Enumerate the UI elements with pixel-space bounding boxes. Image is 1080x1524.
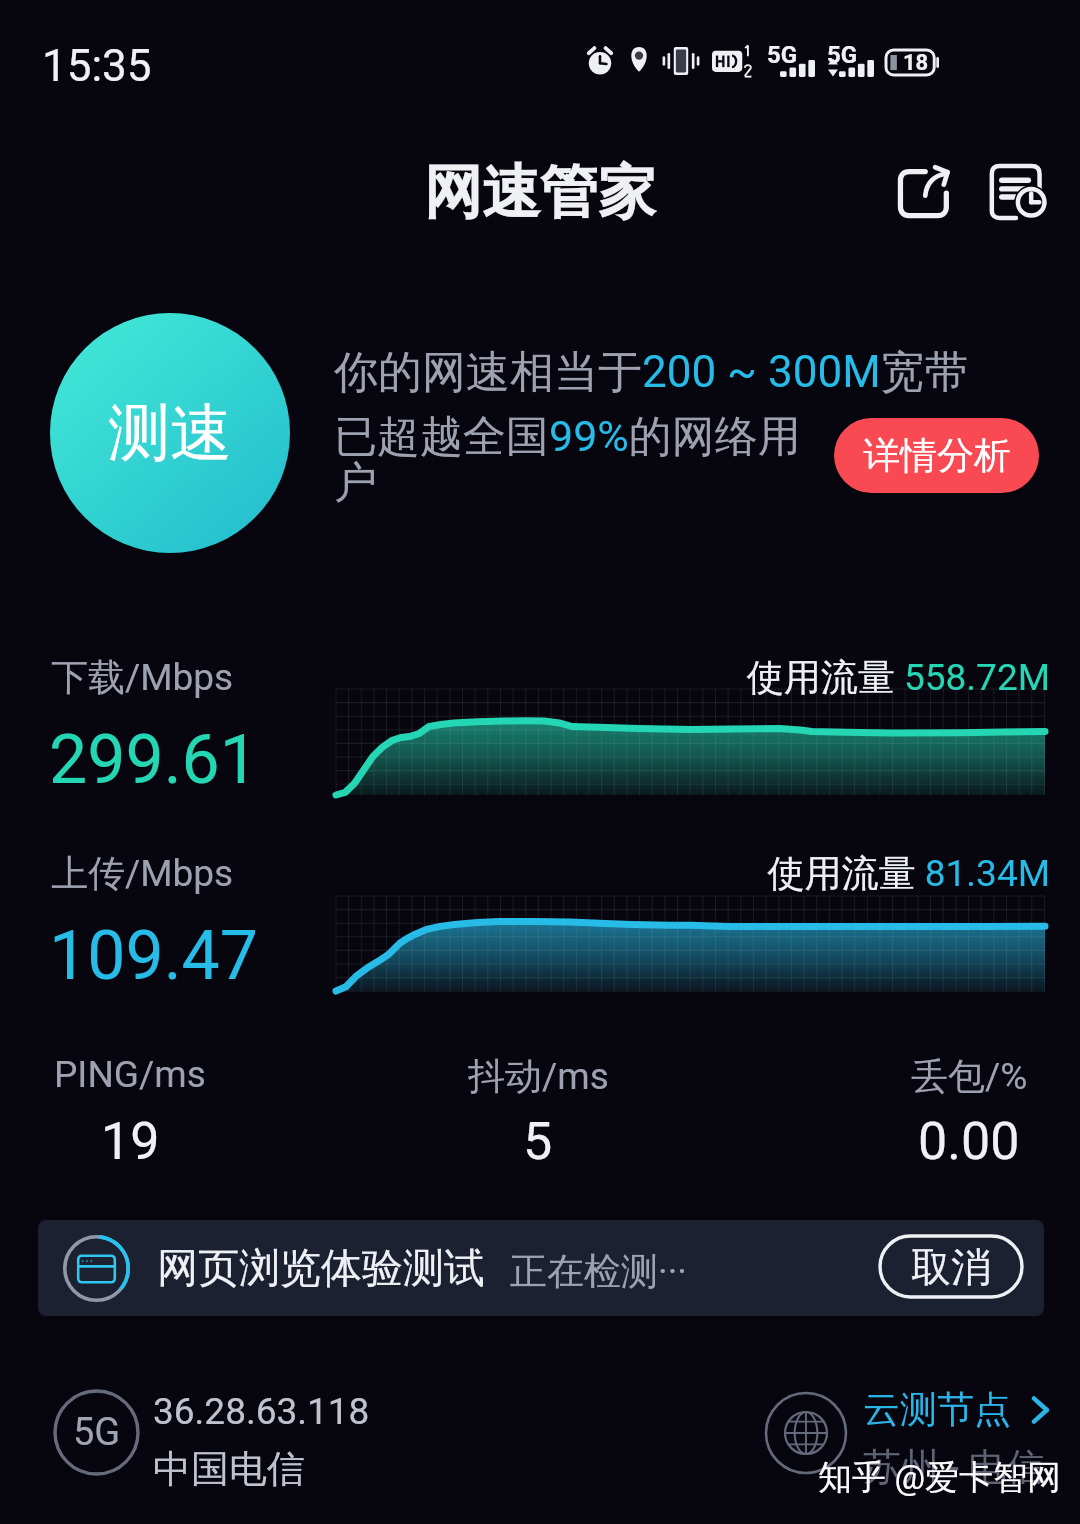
button[interactable]: 5G	[53, 1389, 140, 1476]
button[interactable]: 测速	[50, 313, 290, 553]
staticText: 中国电信	[153, 1445, 305, 1493]
staticText: 使用流量 81.34M	[0, 850, 1050, 897]
staticText: 0.00	[918, 1111, 1020, 1172]
button[interactable]: History	[974, 150, 1058, 234]
staticText: 5G	[827, 41, 858, 69]
button[interactable]: 详情分析	[834, 418, 1039, 493]
button[interactable]: 云测节点	[863, 1386, 1057, 1433]
staticText: 你的网速相当于200 ~ 300M宽带	[334, 345, 969, 400]
staticText: 5	[523, 1111, 553, 1172]
staticText: 已超越全国99%的网络用户	[334, 410, 812, 509]
staticText: 知乎 @爱卡智网	[818, 1456, 1061, 1499]
staticText: 测速	[108, 394, 232, 472]
staticText: 网页浏览体验测试	[157, 1243, 485, 1295]
staticText: 上传/Mbps	[51, 850, 234, 897]
staticText: 5G	[767, 41, 798, 69]
button[interactable]: 取消	[880, 1236, 1022, 1297]
staticText: 抖动/ms	[468, 1053, 609, 1100]
staticText: PING/ms	[54, 1053, 206, 1096]
staticText: 5G	[73, 1410, 121, 1455]
staticText: 网速管家	[424, 156, 656, 229]
staticText: 299.61	[49, 720, 259, 800]
staticText: 18	[903, 50, 929, 76]
staticText: 正在检测···	[510, 1248, 687, 1295]
staticText: 使用流量 558.72M	[0, 654, 1050, 701]
staticText: 下载/Mbps	[51, 654, 234, 701]
staticText: 苏州 - 电信	[863, 1443, 1045, 1491]
staticText: 丢包/%	[911, 1053, 1028, 1100]
staticText: 19	[101, 1111, 160, 1172]
staticText: 36.28.63.118	[153, 1390, 370, 1433]
staticText: 云测节点	[863, 1386, 1011, 1433]
button[interactable]: Node	[764, 1391, 848, 1475]
staticText: 15:35	[42, 40, 152, 92]
staticText: 详情分析	[863, 432, 1011, 479]
button[interactable]: 网页浏览体验测试	[38, 1220, 1044, 1316]
staticText: 取消	[911, 1242, 991, 1292]
button[interactable]: Share	[882, 150, 966, 234]
staticText: 109.47	[49, 916, 259, 996]
